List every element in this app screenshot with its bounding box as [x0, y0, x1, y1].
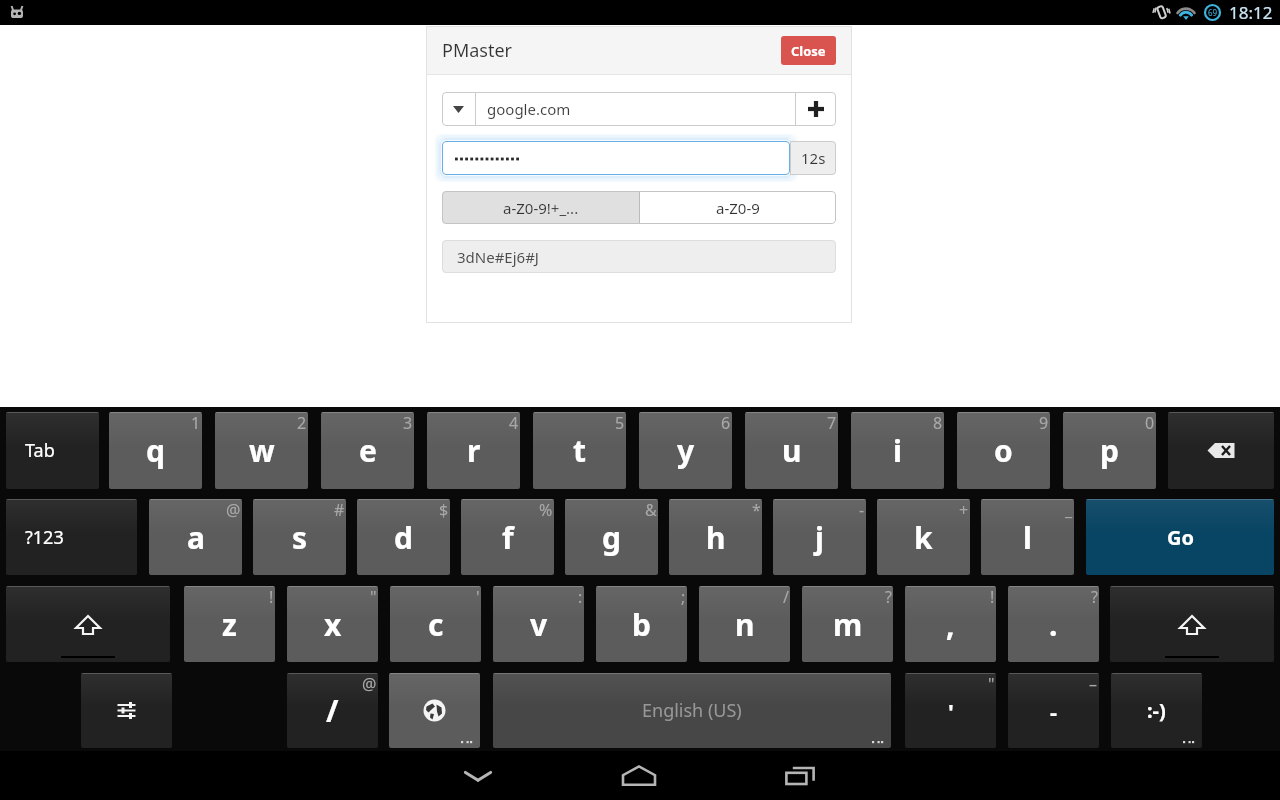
- staticText: @: [226, 499, 241, 521]
- button[interactable]: Hide keyboard: [438, 751, 518, 800]
- staticText: g: [602, 517, 621, 558]
- button[interactable]: 7: [745, 412, 838, 489]
- button[interactable]: 3: [321, 412, 414, 489]
- staticText: ": [370, 586, 377, 608]
- button[interactable]: @: [149, 499, 242, 575]
- button[interactable]: !: [905, 586, 996, 662]
- staticText: 6: [721, 412, 731, 434]
- button[interactable]: !: [184, 586, 275, 662]
- button[interactable]: Shift: [6, 586, 170, 662]
- button[interactable]: -: [773, 499, 866, 575]
- staticText: 3: [403, 412, 413, 434]
- staticText: 5: [615, 412, 625, 434]
- staticText: ;: [681, 586, 686, 608]
- staticText: English (US): [642, 698, 742, 723]
- staticText: o: [994, 430, 1013, 471]
- button[interactable]: –: [1008, 673, 1099, 748]
- button[interactable]: /: [699, 586, 790, 662]
- button[interactable]: Change language: [389, 673, 480, 748]
- staticText: 69: [1208, 7, 1218, 18]
- staticText: t: [573, 430, 587, 471]
- staticText: Close: [791, 42, 826, 60]
- button[interactable]: Close: [781, 36, 836, 65]
- staticText: a: [187, 517, 205, 558]
- button[interactable]: ': [390, 586, 481, 662]
- staticText: 2: [297, 412, 307, 434]
- staticText: 12s: [801, 148, 826, 168]
- staticText: !: [990, 586, 995, 608]
- button[interactable]: 2: [215, 412, 308, 489]
- staticText: ,: [946, 604, 955, 645]
- button[interactable]: Settings: [81, 673, 172, 748]
- button[interactable]: Backspace: [1168, 412, 1274, 489]
- button[interactable]: 1: [109, 412, 202, 489]
- button[interactable]: Shift: [1110, 586, 1274, 662]
- staticText: v: [530, 604, 548, 645]
- staticText: PMaster: [442, 38, 513, 63]
- button[interactable]: 12s: [790, 141, 836, 175]
- staticText: &: [645, 499, 657, 521]
- staticText: y: [677, 430, 695, 471]
- staticText: r: [467, 430, 481, 471]
- button[interactable]: +: [877, 499, 970, 575]
- button[interactable]: ": [905, 673, 996, 748]
- button[interactable]: 0: [1063, 412, 1156, 489]
- button[interactable]: 3dNe#Ej6#J: [442, 240, 836, 273]
- button[interactable]: ?: [1008, 586, 1099, 662]
- staticText: ": [988, 673, 995, 695]
- button[interactable]: &: [565, 499, 658, 575]
- staticText: a-Z0-9!+_...: [503, 198, 579, 218]
- button[interactable]: 6: [639, 412, 732, 489]
- button[interactable]: :: [493, 586, 584, 662]
- staticText: 3dNe#Ej6#J: [457, 247, 539, 267]
- staticText: e: [359, 430, 377, 471]
- staticText: _: [1065, 499, 1073, 521]
- staticText: $: [439, 499, 449, 521]
- staticText: x: [324, 604, 342, 645]
- button[interactable]: Go: [1086, 499, 1274, 575]
- staticText: a-Z0-9: [716, 198, 760, 218]
- button[interactable]: 5: [533, 412, 626, 489]
- button[interactable]: 9: [957, 412, 1050, 489]
- button[interactable]: a-Z0-9: [640, 191, 836, 224]
- staticText: -: [859, 499, 865, 521]
- staticText: :-): [1147, 697, 1166, 724]
- staticText: f: [502, 517, 514, 558]
- button[interactable]: 4: [427, 412, 520, 489]
- button[interactable]: Recent apps: [760, 751, 840, 800]
- button[interactable]: a-Z0-9!+_...: [442, 191, 639, 224]
- staticText: l: [1023, 517, 1032, 558]
- staticText: d: [394, 517, 413, 558]
- button[interactable]: :-): [1111, 673, 1202, 748]
- staticText: @: [362, 673, 377, 695]
- staticText: ': [476, 586, 480, 608]
- button[interactable]: $: [357, 499, 450, 575]
- staticText: 7: [827, 412, 837, 434]
- button[interactable]: Choose site: [442, 92, 475, 126]
- staticText: !: [269, 586, 274, 608]
- button[interactable]: _: [981, 499, 1074, 575]
- staticText: u: [782, 430, 802, 471]
- button[interactable]: ;: [596, 586, 687, 662]
- button[interactable]: *: [669, 499, 762, 575]
- button[interactable]: ": [287, 586, 378, 662]
- button[interactable]: Add: [796, 92, 836, 126]
- staticText: j: [815, 517, 824, 558]
- button[interactable]: Tab: [6, 412, 99, 489]
- staticText: google.com: [487, 99, 571, 119]
- button[interactable]: Space: [493, 673, 891, 748]
- button[interactable]: ?: [802, 586, 893, 662]
- staticText: b: [632, 604, 651, 645]
- staticText: ': [948, 696, 954, 726]
- button[interactable]: [442, 141, 790, 175]
- button[interactable]: 8: [851, 412, 944, 489]
- button[interactable]: Home: [599, 751, 679, 800]
- button[interactable]: #: [253, 499, 346, 575]
- button[interactable]: ?123: [6, 499, 137, 575]
- staticText: q: [146, 430, 165, 471]
- button[interactable]: @: [287, 673, 378, 748]
- staticText: i: [893, 430, 902, 471]
- staticText: z: [222, 604, 237, 645]
- button[interactable]: %: [461, 499, 554, 575]
- button[interactable]: google.com: [476, 92, 795, 126]
